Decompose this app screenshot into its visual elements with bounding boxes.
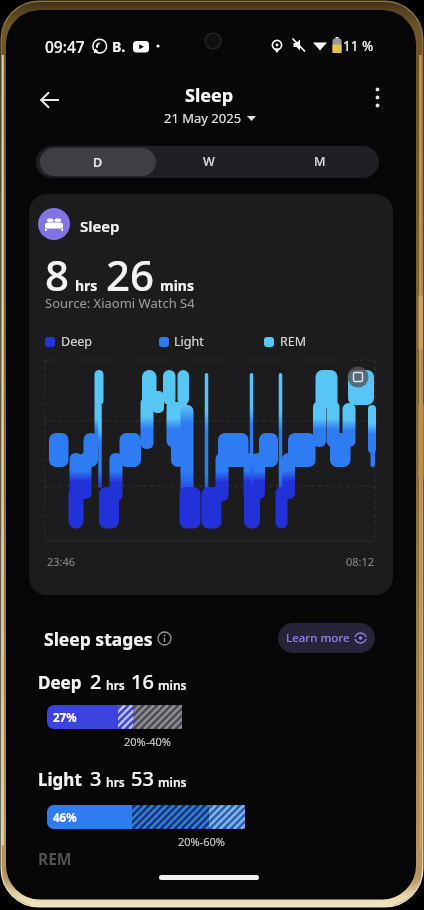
staticText: Learn more — [286, 630, 350, 646]
staticText: M — [314, 153, 326, 170]
staticText: 09:47 — [45, 36, 85, 57]
staticText: 11 % — [343, 37, 374, 55]
staticText: 3 — [90, 765, 102, 792]
staticText: 26 — [106, 246, 155, 303]
staticText: 20%-40% — [124, 734, 171, 749]
staticText: REM — [38, 848, 72, 869]
button[interactable]: 21 May 2025 — [164, 109, 256, 127]
staticText: Sleep — [80, 216, 120, 236]
staticText: mins — [158, 677, 187, 693]
staticText: D — [93, 154, 103, 171]
staticText: 08:12 — [346, 554, 375, 569]
staticText: 53 — [131, 765, 154, 792]
button[interactable] — [47, 705, 182, 729]
staticText: 20%-60% — [178, 834, 225, 849]
staticText: Source: Xiaomi Watch S4 — [45, 294, 195, 312]
staticText: Sleep stages — [44, 627, 153, 651]
button[interactable] — [38, 88, 62, 112]
staticText: hrs — [75, 276, 98, 295]
button[interactable]: D — [40, 148, 156, 176]
button[interactable] — [47, 805, 245, 829]
staticText: REM — [280, 333, 307, 350]
staticText: 46% — [53, 810, 77, 826]
staticText: Sleep — [185, 83, 234, 108]
staticText: Deep — [61, 333, 92, 350]
staticText: 23:46 — [47, 554, 76, 569]
button[interactable]: Learn more — [278, 623, 375, 653]
staticText: Light — [38, 768, 82, 791]
staticText: 16 — [131, 668, 154, 695]
staticText: Deep — [38, 671, 82, 694]
staticText: B. — [112, 37, 126, 56]
button[interactable] — [370, 83, 385, 113]
button[interactable] — [347, 366, 369, 388]
staticText: mins — [158, 774, 187, 790]
staticText: hrs — [106, 774, 125, 790]
staticText: 2 — [90, 668, 102, 695]
staticText: mins — [160, 276, 194, 295]
staticText: Light — [174, 333, 204, 350]
staticText: hrs — [106, 677, 125, 693]
button[interactable]: M — [270, 146, 370, 176]
button[interactable]: W — [159, 146, 259, 176]
staticText: W — [203, 153, 215, 170]
staticText: 21 May 2025 — [164, 109, 242, 127]
staticText: 8 — [45, 246, 70, 303]
staticText: 27% — [53, 710, 77, 726]
